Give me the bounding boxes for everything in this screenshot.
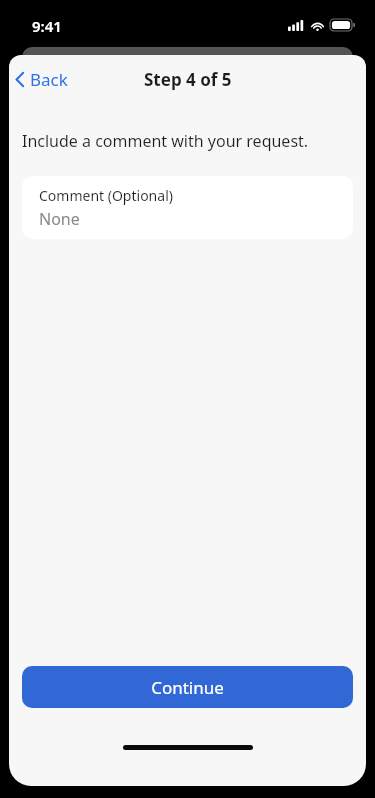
staticText: Step 4 of 5: [144, 68, 232, 91]
staticText: None: [39, 208, 80, 230]
button[interactable]: Continue: [22, 666, 353, 708]
staticText: Comment (Optional): [39, 186, 173, 205]
staticText: Back: [30, 68, 68, 91]
staticText: 9:41: [32, 16, 62, 36]
staticText: Include a comment with your request.: [22, 130, 309, 152]
staticText: Continue: [151, 676, 224, 699]
button[interactable]: Comment (Optional): [22, 176, 353, 239]
button[interactable]: Back: [9, 62, 78, 97]
